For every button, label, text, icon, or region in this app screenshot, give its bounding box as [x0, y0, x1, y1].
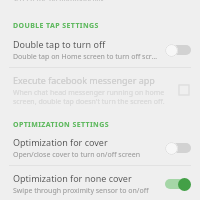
- staticText: Open/close cover to turn on/off screen: [13, 150, 141, 160]
- staticText: Execute facebook messenger app: [13, 74, 155, 86]
- staticText: Double tap on Home screen to turn off sc…: [13, 52, 159, 62]
- staticText: Double tap to turn off: [13, 38, 106, 50]
- staticText: Swipe through proximity sensor to on/off…: [13, 186, 159, 196]
- staticText: OPTIMIZATION SETTINGS: [13, 120, 109, 130]
- staticText: DOUBLE TAP SETTINGS: [13, 21, 99, 31]
- staticText: Optimization for cover: [13, 136, 108, 148]
- button[interactable]: Execute facebook messenger app: [0, 68, 200, 112]
- button[interactable]: Double tap to turn off: [0, 37, 200, 67]
- staticText: When chat head messenger running on home…: [13, 88, 171, 106]
- button[interactable]: Optimization for cover switch: [165, 141, 191, 155]
- staticText: Optimization for none cover: [13, 172, 132, 184]
- button[interactable]: Execute facebook messenger app checkbox: [177, 83, 191, 97]
- button[interactable]: Optimization for none cover: [0, 166, 200, 200]
- button[interactable]: Double tap to turn off switch: [165, 43, 191, 57]
- button[interactable]: Optimization for cover: [0, 136, 200, 165]
- button[interactable]: Optimization for none cover switch: [165, 177, 191, 191]
- staticText: screen the on automatically.: [13, 0, 106, 1]
